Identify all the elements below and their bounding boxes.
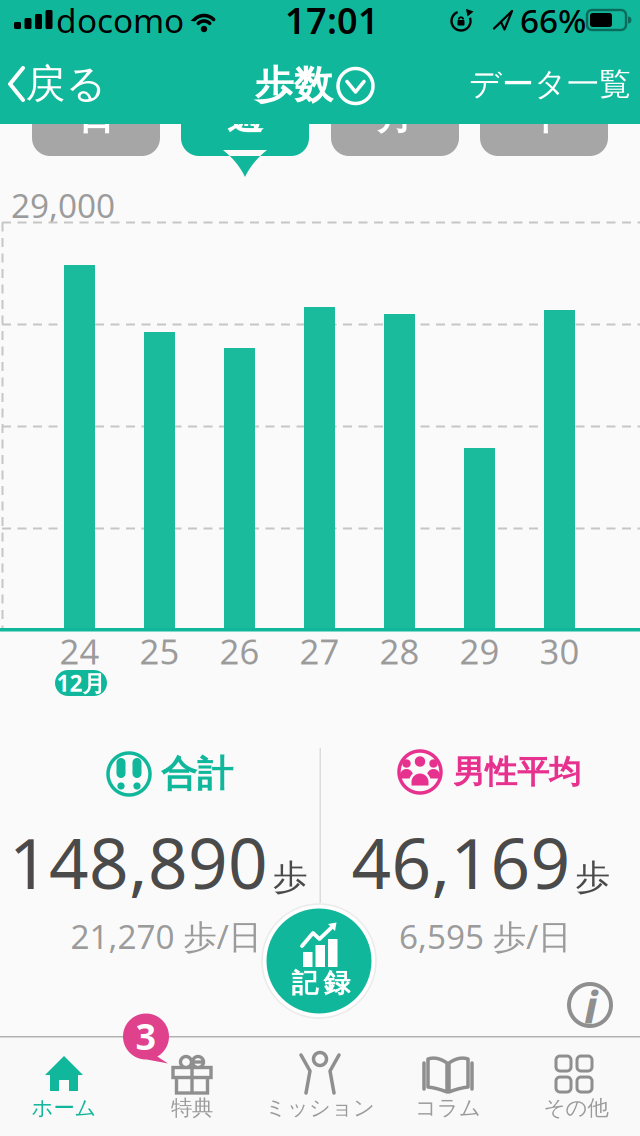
button[interactable]: 特典 <box>128 1037 256 1136</box>
staticText: 歩 <box>273 856 308 899</box>
staticText: コラム <box>415 1095 481 1121</box>
button[interactable]: 週 <box>181 88 309 178</box>
staticText: docomo <box>56 0 184 42</box>
staticText: i <box>584 976 598 1036</box>
button[interactable]: データ一覧 <box>440 59 640 109</box>
staticText: 46,169 <box>351 816 570 908</box>
staticText: 148,890 <box>9 816 268 908</box>
staticText: 記録 <box>291 967 350 999</box>
staticText: 3 <box>135 1012 156 1060</box>
staticText: ホーム <box>31 1095 96 1121</box>
staticText: 年 <box>526 95 562 139</box>
button[interactable]: 日 <box>32 88 160 156</box>
staticText: 月 <box>377 95 413 139</box>
staticText: 歩数 <box>255 61 333 109</box>
button[interactable]: 記録 <box>261 903 377 1019</box>
staticText: ミッション <box>265 1095 375 1121</box>
staticText: データ一覧 <box>469 64 631 104</box>
staticText: 17:01 <box>285 0 379 44</box>
staticText: 25 <box>139 628 179 674</box>
button[interactable]: 年 <box>480 88 608 156</box>
staticText: 27 <box>299 628 339 674</box>
staticText: 28 <box>379 628 419 674</box>
staticText: 21,270 歩/日 <box>70 914 261 958</box>
staticText: 男性平均 <box>453 752 581 792</box>
button[interactable]: 月 <box>331 88 459 156</box>
staticText: 29,000 <box>11 183 115 227</box>
button[interactable]: 戻る <box>6 56 116 112</box>
button[interactable]: その他 <box>512 1037 640 1136</box>
button[interactable]: ミッション <box>256 1037 384 1136</box>
button[interactable]: コラム <box>384 1037 512 1136</box>
staticText: 合計 <box>161 752 233 796</box>
staticText: 24 <box>59 628 99 674</box>
staticText: 日 <box>78 95 114 139</box>
button[interactable]: 歩数 <box>227 57 397 113</box>
staticText: その他 <box>543 1095 608 1121</box>
staticText: 12月 <box>56 668 105 698</box>
staticText: 歩 <box>575 856 610 899</box>
button[interactable]: ホーム <box>0 1037 128 1136</box>
staticText: 66% <box>520 0 586 42</box>
staticText: 29 <box>459 628 499 674</box>
button[interactable]: i <box>567 982 613 1028</box>
staticText: 特典 <box>171 1095 213 1121</box>
staticText: 戻る <box>25 59 106 108</box>
staticText: 26 <box>219 628 259 674</box>
staticText: 30 <box>539 628 579 674</box>
staticText: 週 <box>227 95 263 139</box>
staticText: 6,595 歩/日 <box>399 914 571 958</box>
